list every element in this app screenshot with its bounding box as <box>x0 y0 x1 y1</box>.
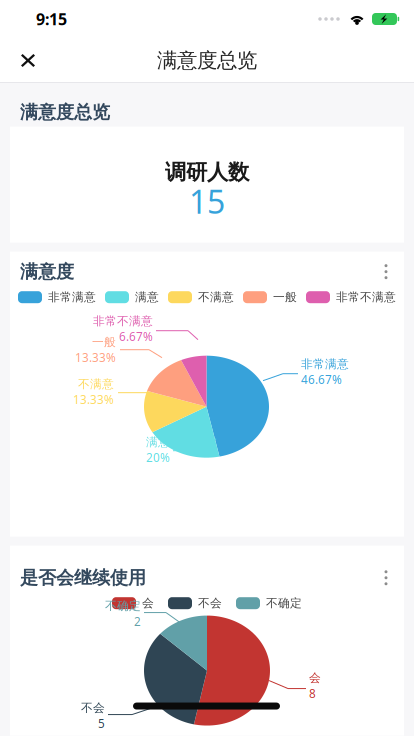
staticText: 一般 <box>92 335 116 349</box>
staticText: 调研人数 <box>165 159 249 186</box>
staticText: 不会 <box>198 596 222 611</box>
staticText: 满意度总览 <box>157 48 257 73</box>
staticText: 不确定 <box>105 599 141 613</box>
staticText: 满意度 <box>20 260 74 283</box>
staticText: 满意度总览 <box>20 101 110 124</box>
button[interactable]: Close <box>0 38 47 83</box>
staticText: 非常满意 <box>301 357 349 371</box>
button[interactable]: More options <box>373 259 399 285</box>
staticText: 15 <box>189 179 225 223</box>
staticText: 一般 <box>273 290 297 305</box>
staticText: 20% <box>146 449 170 465</box>
staticText: 是否会继续使用 <box>20 566 146 589</box>
staticText: 不确定 <box>266 596 302 611</box>
staticText: 9:15 <box>36 8 67 30</box>
button[interactable]: More options <box>373 565 399 591</box>
staticText: 8 <box>309 685 316 701</box>
staticText: 会 <box>309 671 321 685</box>
staticText: 6.67% <box>119 328 153 344</box>
staticText: 不满意 <box>198 290 234 305</box>
staticText: 非常不满意 <box>336 290 396 305</box>
staticText: 不会 <box>81 701 105 715</box>
staticText: 13.33% <box>73 391 114 407</box>
staticText: 2 <box>134 613 141 629</box>
staticText: 非常满意 <box>48 290 96 305</box>
staticText: 满意 <box>146 435 170 449</box>
staticText: 非常不满意 <box>93 314 153 328</box>
staticText: 46.67% <box>301 371 342 387</box>
staticText: 13.33% <box>75 349 116 365</box>
staticText: 满意 <box>135 290 159 305</box>
staticText: 5 <box>98 715 105 731</box>
staticText: 不满意 <box>78 377 114 391</box>
staticText: 会 <box>142 596 154 611</box>
